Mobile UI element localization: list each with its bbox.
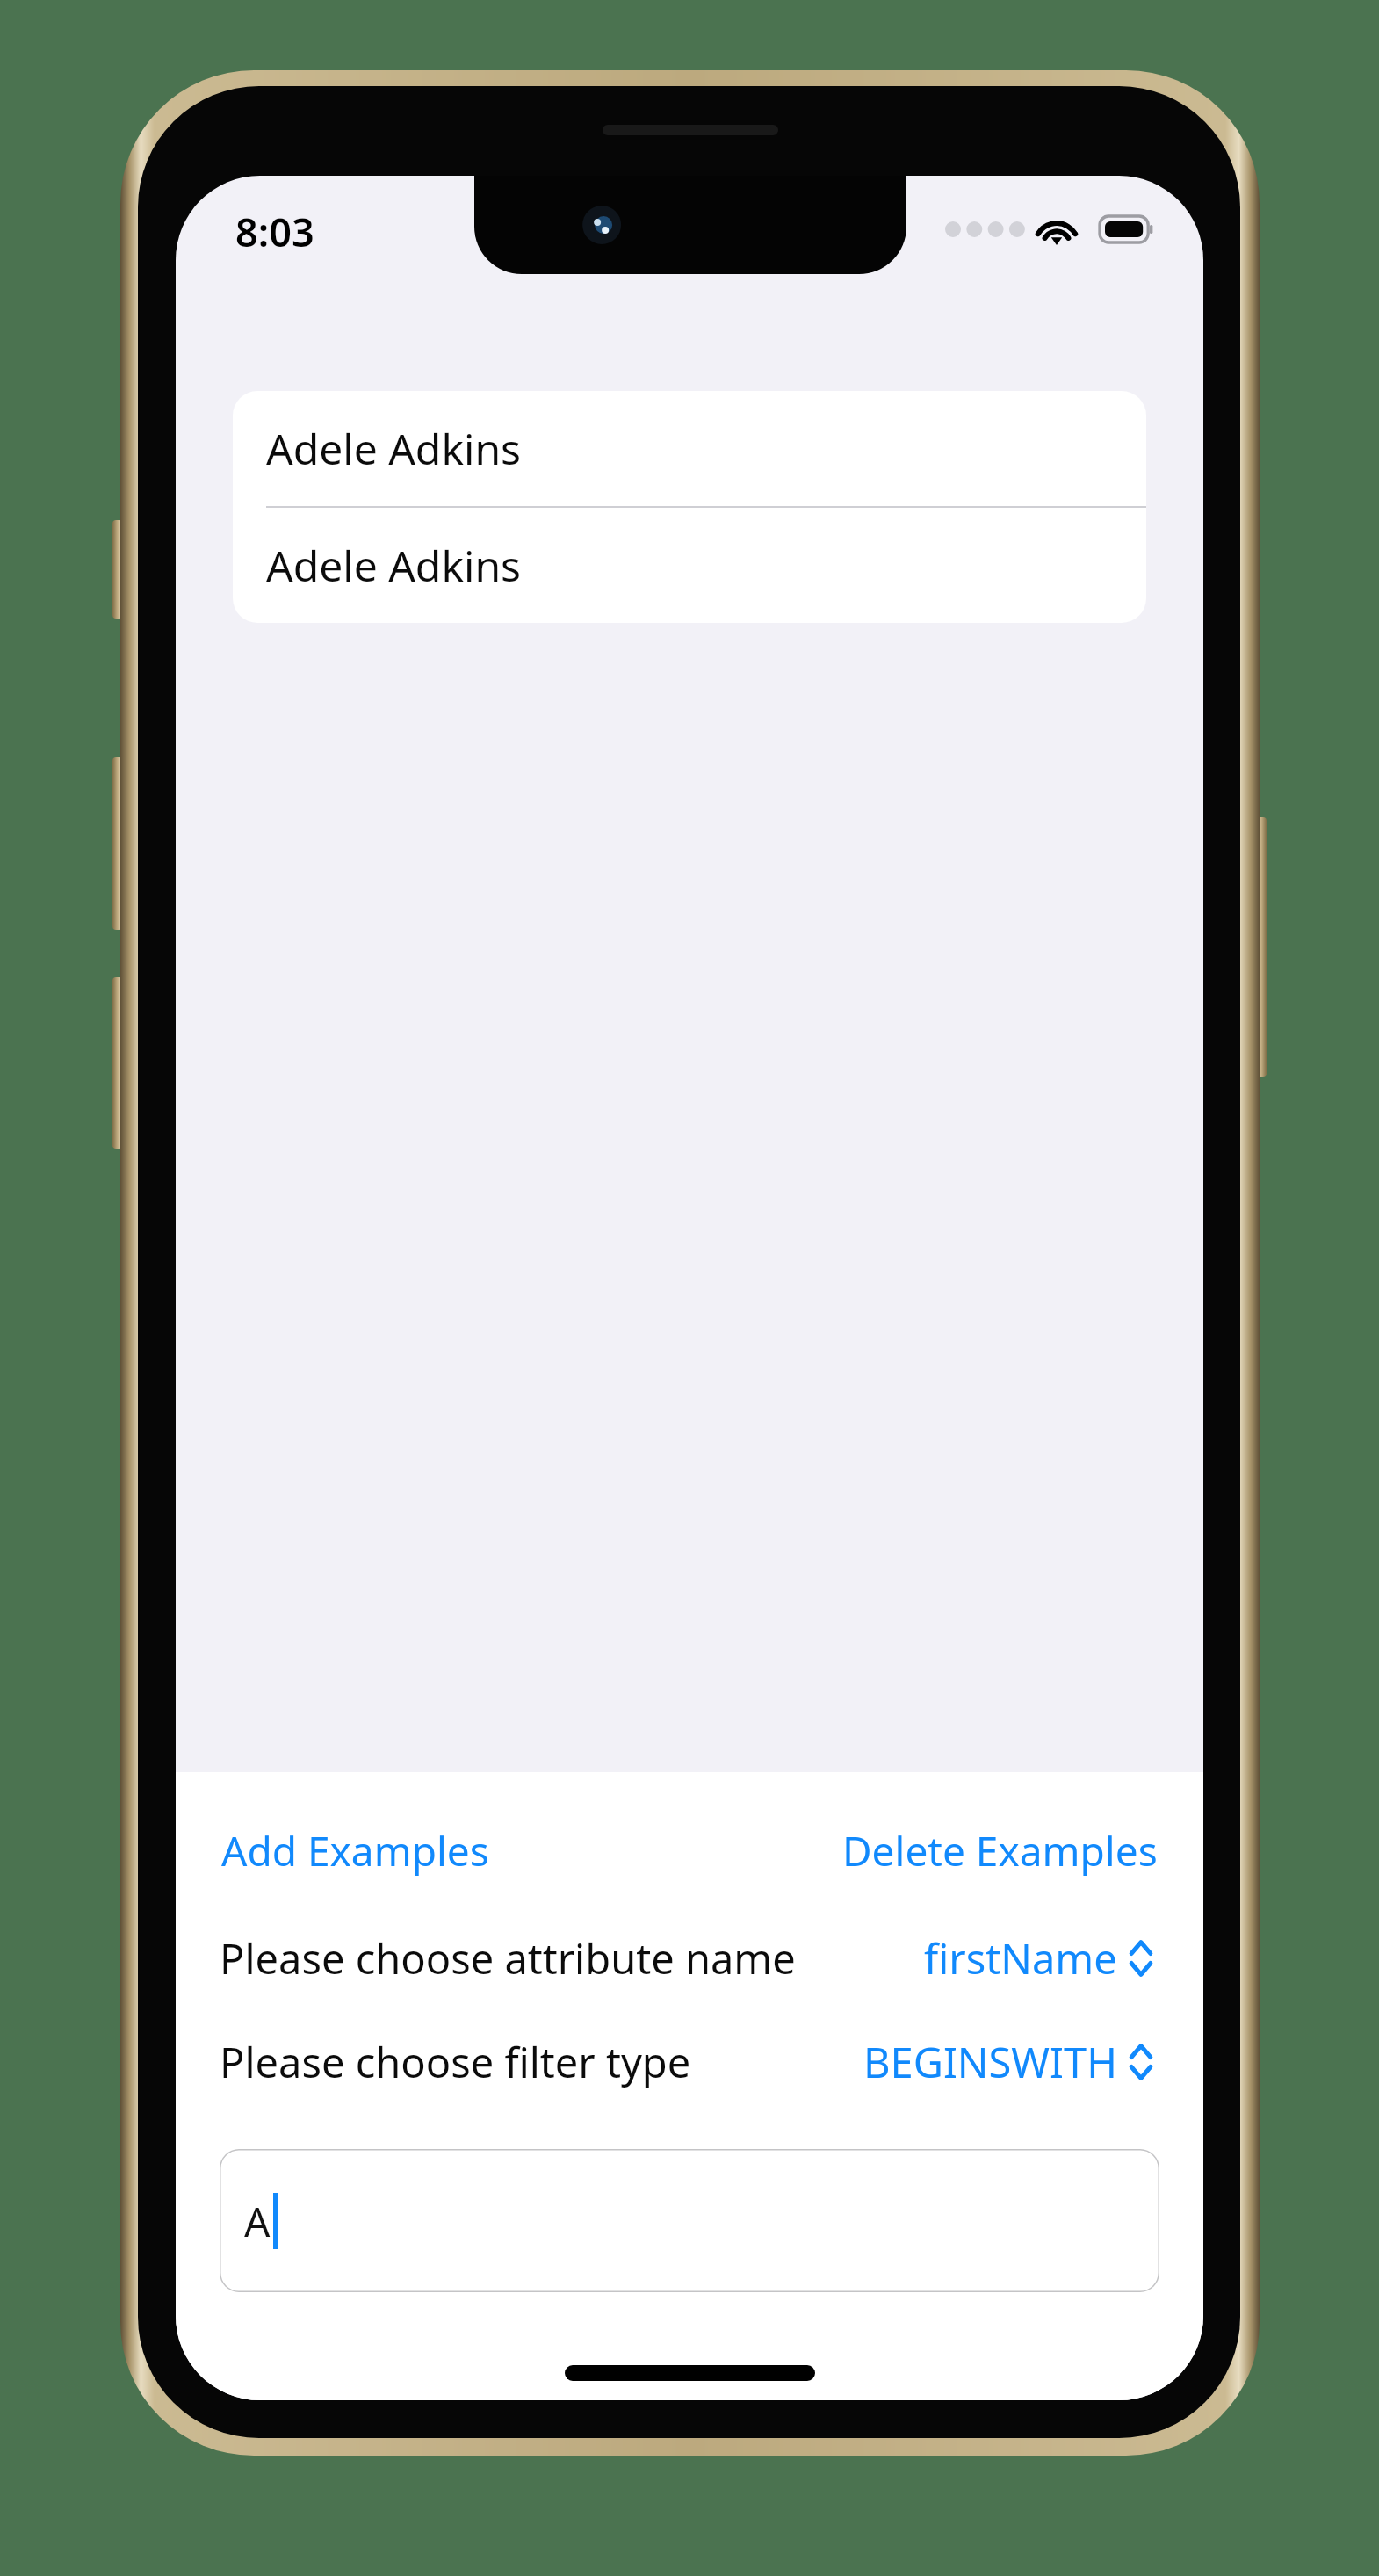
staticText: Delete Examples: [842, 1823, 1158, 1878]
button[interactable]: A: [220, 2149, 1159, 2292]
staticText: Adele Adkins: [266, 420, 522, 477]
staticText: Adele Adkins: [266, 537, 522, 594]
button[interactable]: Adele Adkins: [233, 391, 1146, 506]
staticText: Please choose filter type: [220, 2034, 691, 2090]
other: Open picker: [1128, 1938, 1154, 1979]
button[interactable]: Adele Adkins: [233, 508, 1146, 623]
staticText: Add Examples: [221, 1823, 489, 1878]
staticText: A: [244, 2194, 271, 2249]
button[interactable]: Add Examples: [216, 1818, 495, 1884]
other: Open picker: [1128, 2042, 1154, 2082]
staticText: 8:03: [235, 205, 314, 258]
staticText: BEGINSWITH: [863, 2034, 1117, 2090]
button[interactable]: Delete Examples: [837, 1818, 1163, 1884]
button[interactable]: firstName: [919, 1930, 1159, 1986]
button[interactable]: BEGINSWITH: [858, 2034, 1159, 2090]
staticText: firstName: [924, 1930, 1117, 1986]
staticText: Please choose attribute name: [220, 1930, 796, 1986]
